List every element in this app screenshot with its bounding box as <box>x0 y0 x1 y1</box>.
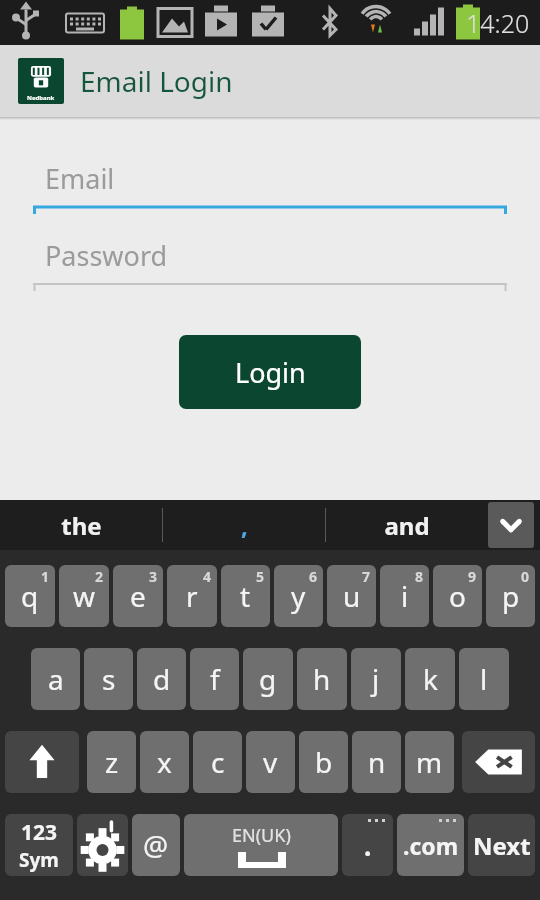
button[interactable]: r <box>167 565 217 627</box>
staticText: b <box>315 743 333 781</box>
button[interactable]: Space <box>184 814 338 876</box>
staticText: t <box>240 577 251 615</box>
staticText: u <box>343 577 361 615</box>
staticText: 14:20 <box>466 6 530 40</box>
staticText: y <box>291 577 306 615</box>
button[interactable]: e <box>113 565 163 627</box>
staticText: Password <box>45 237 168 274</box>
staticText: EN(UK) <box>232 823 291 848</box>
staticText: w <box>73 577 96 615</box>
button[interactable]: b <box>299 731 348 793</box>
staticText: 5 <box>256 567 265 586</box>
button[interactable]: u <box>327 565 376 627</box>
other: Nedbank app icon <box>18 58 64 104</box>
button[interactable]: Next <box>468 814 535 876</box>
button[interactable]: Shift <box>5 731 79 793</box>
button[interactable]: d <box>137 648 186 710</box>
staticText: v <box>263 743 278 781</box>
staticText: x <box>157 743 172 781</box>
staticText: p <box>502 577 520 615</box>
button[interactable]: i <box>380 565 429 627</box>
staticText: Sym <box>19 847 59 873</box>
staticText: s <box>102 660 116 698</box>
staticText: h <box>313 660 331 698</box>
staticText: Nedbank <box>27 94 55 102</box>
staticText: 123 <box>21 818 58 847</box>
button[interactable]: q <box>5 565 55 627</box>
staticText: f <box>210 660 220 698</box>
button[interactable]: f <box>190 648 239 710</box>
staticText: Email Login <box>80 62 233 100</box>
staticText: k <box>423 660 438 698</box>
button[interactable]: v <box>246 731 295 793</box>
button[interactable]: 123 <box>5 814 73 876</box>
staticText: , <box>241 509 248 542</box>
staticText: 2 <box>95 567 104 586</box>
button[interactable]: x <box>140 731 189 793</box>
button[interactable]: z <box>87 731 136 793</box>
staticText: 6 <box>309 567 318 586</box>
staticText: Next <box>473 829 531 862</box>
button[interactable]: c <box>193 731 242 793</box>
staticText: 9 <box>468 567 477 586</box>
button[interactable]: a <box>31 648 80 710</box>
button[interactable]: g <box>243 648 293 710</box>
button[interactable]: o <box>433 565 482 627</box>
staticText: e <box>130 577 146 615</box>
button[interactable]: n <box>352 731 401 793</box>
button[interactable]: s <box>84 648 133 710</box>
staticText: . <box>364 828 372 863</box>
button[interactable]: , <box>163 500 325 550</box>
button[interactable]: Password <box>33 237 507 290</box>
button[interactable]: t <box>221 565 270 627</box>
staticText: a <box>48 660 64 698</box>
staticText: .com <box>403 830 459 861</box>
staticText: g <box>259 660 277 698</box>
staticText: Email <box>45 160 115 197</box>
button[interactable]: .com <box>397 814 464 876</box>
staticText: @ <box>143 826 169 864</box>
button[interactable]: Settings <box>77 814 128 876</box>
staticText: q <box>21 577 39 615</box>
button[interactable]: l <box>459 648 509 710</box>
staticText: 3 <box>149 567 158 586</box>
staticText: i <box>401 577 409 615</box>
staticText: c <box>211 743 225 781</box>
staticText: m <box>416 743 443 781</box>
staticText: z <box>105 743 119 781</box>
button[interactable]: . <box>342 814 393 876</box>
staticText: j <box>372 660 380 698</box>
staticText: 1 <box>41 567 50 586</box>
button[interactable]: y <box>274 565 323 627</box>
staticText: the <box>61 509 102 542</box>
staticText: Login <box>235 354 306 391</box>
button[interactable]: Hide suggestions <box>488 502 534 548</box>
button[interactable]: the <box>0 500 162 550</box>
staticText: n <box>368 743 386 781</box>
button[interactable]: j <box>351 648 401 710</box>
staticText: and <box>384 509 430 542</box>
button[interactable]: h <box>297 648 347 710</box>
staticText: o <box>449 577 466 615</box>
staticText: 7 <box>362 567 371 586</box>
button[interactable]: Login <box>179 335 361 409</box>
button[interactable]: m <box>405 731 454 793</box>
staticText: 0 <box>521 567 530 586</box>
staticText: d <box>153 660 171 698</box>
button[interactable]: k <box>405 648 455 710</box>
button[interactable]: Email <box>33 160 507 213</box>
button[interactable]: Backspace <box>462 731 535 793</box>
button[interactable]: p <box>486 565 535 627</box>
button[interactable]: @ <box>132 814 180 876</box>
staticText: 8 <box>415 567 424 586</box>
staticText: l <box>480 660 488 698</box>
staticText: r <box>186 577 198 615</box>
staticText: 4 <box>203 567 212 586</box>
button[interactable]: w <box>59 565 109 627</box>
button[interactable]: and <box>326 500 488 550</box>
